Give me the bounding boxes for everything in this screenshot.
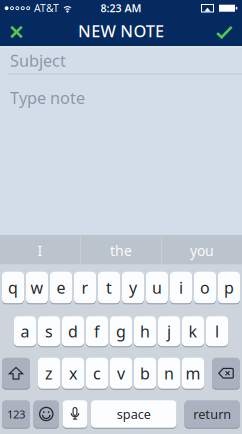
button[interactable]: o (194, 272, 216, 303)
staticText: y (129, 277, 137, 298)
staticText: v (117, 362, 125, 384)
staticText: g (116, 320, 126, 342)
staticText: m (185, 362, 200, 384)
button[interactable]: i (170, 272, 192, 303)
staticText: c (93, 362, 101, 384)
staticText: the (110, 241, 132, 260)
staticText: j (167, 320, 171, 342)
button[interactable]: d (62, 316, 84, 346)
staticText: d (68, 320, 78, 342)
staticText: space (117, 405, 151, 423)
button[interactable]: p (218, 272, 240, 303)
button[interactable]: j (158, 316, 180, 346)
button[interactable]: y (122, 272, 144, 303)
staticText: a (20, 320, 29, 342)
button[interactable]: space (91, 400, 176, 428)
button[interactable]: Cancel (0, 23, 23, 38)
button[interactable]: return (184, 400, 240, 428)
staticText: t (106, 277, 112, 298)
staticText: p (224, 277, 234, 298)
staticText: e (56, 277, 65, 298)
staticText: l (215, 320, 219, 342)
button[interactable]: s (38, 316, 60, 346)
button[interactable]: q (2, 272, 24, 303)
button[interactable]: Dictate (62, 400, 87, 428)
button[interactable]: you (162, 235, 242, 266)
staticText: k (188, 320, 197, 342)
button[interactable]: f (86, 316, 108, 346)
button[interactable]: I (0, 235, 80, 266)
button[interactable]: u (146, 272, 168, 303)
button[interactable]: a (14, 316, 36, 346)
staticText: b (140, 362, 150, 384)
staticText: AT&T (34, 1, 59, 15)
staticText: 123 (7, 406, 25, 422)
button[interactable]: Numbers (2, 400, 30, 428)
button[interactable]: v (110, 358, 132, 389)
staticText: 8:23 AM (100, 1, 141, 15)
staticText: x (69, 362, 77, 384)
button[interactable]: w (26, 272, 48, 303)
staticText: i (179, 277, 183, 298)
staticText: h (140, 320, 150, 342)
staticText: Subject (10, 49, 66, 72)
staticText: NEW NOTE (78, 20, 164, 42)
staticText: r (81, 277, 88, 298)
button[interactable]: x (62, 358, 84, 389)
button[interactable]: t (98, 272, 120, 303)
button[interactable]: Save (216, 23, 242, 38)
staticText: I (37, 241, 42, 260)
button[interactable]: Delete (212, 358, 240, 389)
staticText: u (152, 277, 162, 298)
staticText: n (164, 362, 174, 384)
staticText: z (45, 362, 53, 384)
staticText: w (30, 277, 43, 298)
staticText: you (190, 241, 214, 260)
button[interactable]: b (134, 358, 156, 389)
button[interactable]: h (134, 316, 156, 346)
button[interactable]: the (81, 235, 161, 266)
button[interactable]: Emoji (33, 400, 59, 428)
staticText: return (193, 405, 231, 423)
button[interactable]: Shift (2, 358, 30, 389)
button[interactable]: e (50, 272, 72, 303)
staticText: q (8, 277, 18, 298)
button[interactable]: r (74, 272, 96, 303)
staticText: Type note (10, 86, 85, 109)
button[interactable]: m (182, 358, 204, 389)
staticText: o (200, 277, 210, 298)
button[interactable]: l (206, 316, 228, 346)
button[interactable]: g (110, 316, 132, 346)
staticText: f (94, 320, 100, 342)
button[interactable]: k (182, 316, 204, 346)
button[interactable]: n (158, 358, 180, 389)
staticText: s (45, 320, 53, 342)
button[interactable]: c (86, 358, 108, 389)
button[interactable]: z (38, 358, 60, 389)
